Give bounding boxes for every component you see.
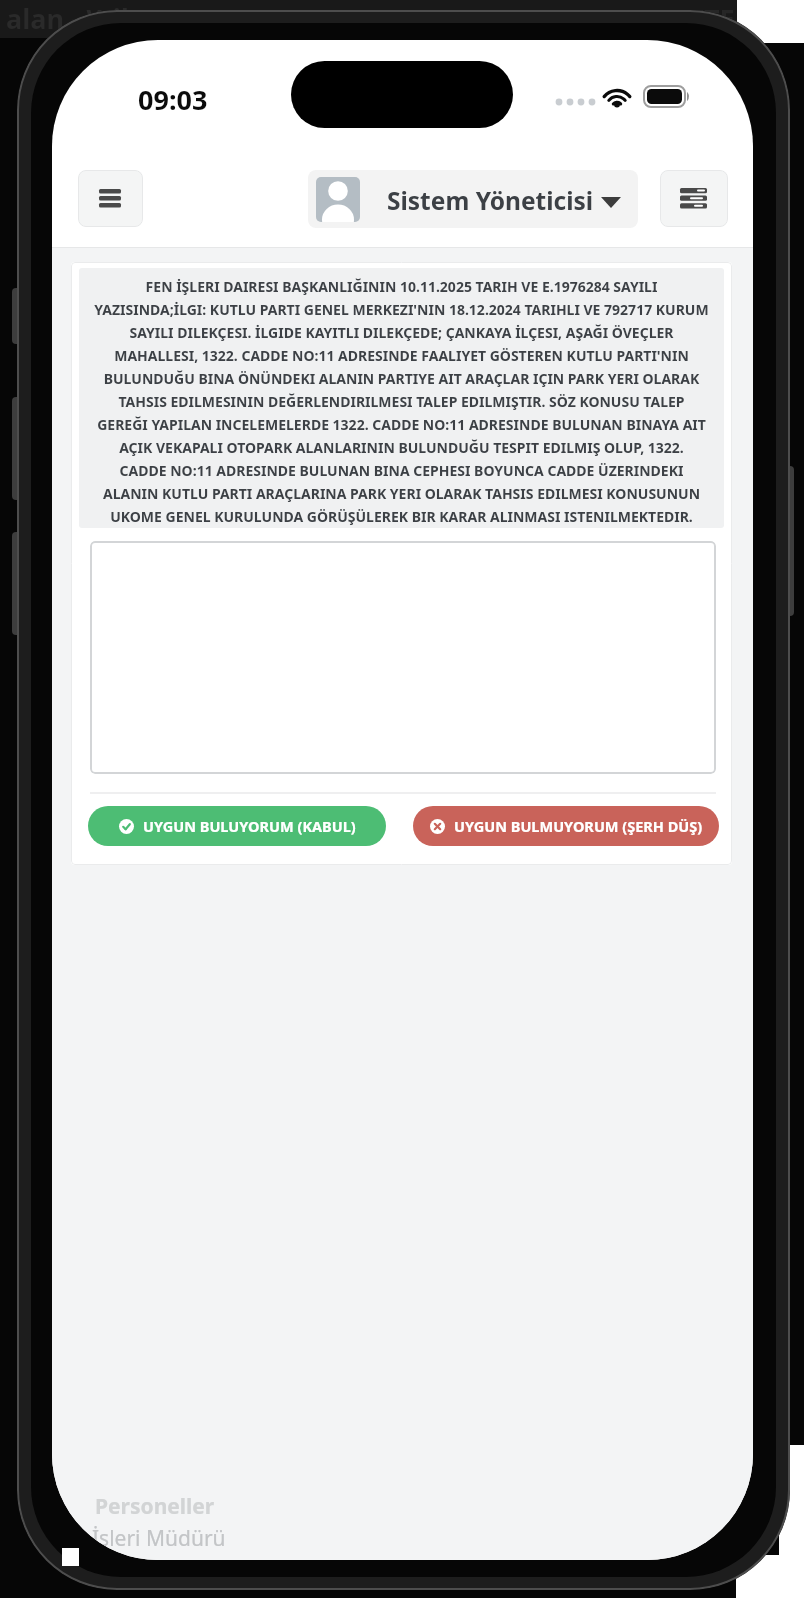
button[interactable]: Sistem Yöneticisi — [308, 170, 638, 228]
staticText: MITE — [668, 0, 735, 37]
button[interactable] — [660, 170, 728, 227]
staticText: alan - Wik — [6, 0, 138, 37]
button[interactable] — [78, 170, 143, 227]
staticText: Sistem Yöneticisi — [387, 184, 594, 217]
staticText: FEN İŞLERI DAIRESI BAŞKANLIĞININ 10.11.2… — [79, 274, 724, 527]
staticText: 09:03 — [138, 81, 208, 118]
staticText: İşleri Müdürü — [92, 1524, 226, 1553]
button[interactable]: UYGUN BULUYORUM (KABUL) — [88, 806, 386, 846]
button[interactable]: UYGUN BULMUYORUM (ŞERH DÜŞ) — [413, 806, 719, 846]
staticText: Personeller — [95, 1492, 215, 1521]
staticText: UYGUN BULMUYORUM (ŞERH DÜŞ) — [454, 816, 703, 836]
staticText: UYGUN BULUYORUM (KABUL) — [143, 816, 356, 836]
button[interactable] — [90, 541, 716, 774]
